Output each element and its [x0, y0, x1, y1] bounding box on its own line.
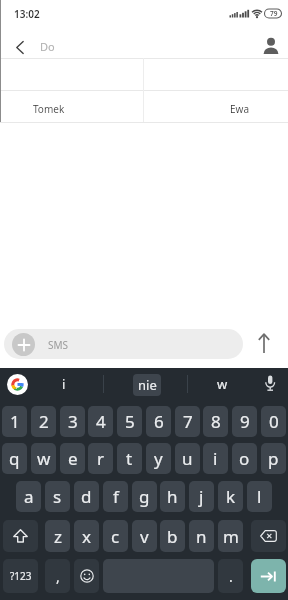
- staticText: n: [196, 525, 207, 548]
- staticText: 4: [96, 410, 106, 433]
- button[interactable]: d: [74, 481, 99, 512]
- staticText: a: [24, 485, 34, 508]
- button[interactable]: p: [261, 443, 286, 474]
- staticText: w: [37, 447, 51, 470]
- staticText: Ewa: [230, 102, 250, 116]
- staticText: 0: [269, 410, 279, 433]
- button[interactable]: 9: [232, 406, 257, 437]
- button[interactable]: k: [218, 481, 243, 512]
- button[interactable]: w: [31, 443, 56, 474]
- button[interactable]: [262, 37, 280, 55]
- staticText: Tomek: [33, 102, 65, 116]
- button[interactable]: s: [45, 481, 70, 512]
- staticText: v: [140, 525, 149, 548]
- button[interactable]: nie: [133, 374, 161, 396]
- button[interactable]: r: [88, 443, 113, 474]
- button[interactable]: 5: [117, 406, 142, 437]
- staticText: 7: [183, 410, 193, 433]
- staticText: r: [97, 447, 105, 470]
- staticText: j: [199, 485, 204, 508]
- button[interactable]: q: [2, 443, 27, 474]
- button[interactable]: i: [27, 370, 100, 398]
- staticText: z: [54, 525, 62, 548]
- staticText: 13:02: [14, 7, 40, 21]
- staticText: w: [217, 375, 228, 393]
- button[interactable]: [251, 520, 286, 552]
- staticText: 1: [10, 410, 20, 433]
- staticText: nie: [138, 376, 157, 394]
- staticText: Do: [40, 39, 55, 54]
- staticText: o: [239, 447, 250, 470]
- button[interactable]: f: [103, 481, 128, 512]
- button[interactable]: [12, 333, 35, 356]
- button[interactable]: j: [189, 481, 214, 512]
- button[interactable]: [251, 559, 286, 593]
- button[interactable]: 7: [175, 406, 200, 437]
- staticText: 6: [154, 410, 164, 433]
- staticText: d: [81, 485, 92, 508]
- staticText: i: [62, 375, 66, 393]
- staticText: s: [53, 485, 62, 508]
- staticText: c: [111, 525, 120, 548]
- button[interactable]: i: [203, 443, 228, 474]
- button[interactable]: t: [117, 443, 142, 474]
- button[interactable]: u: [175, 443, 200, 474]
- button[interactable]: ,: [45, 559, 70, 593]
- button[interactable]: o: [232, 443, 257, 474]
- button[interactable]: [263, 374, 277, 394]
- button[interactable]: g: [132, 481, 157, 512]
- staticText: i: [213, 447, 218, 470]
- staticText: 8: [211, 410, 221, 433]
- staticText: m: [223, 525, 239, 548]
- button[interactable]: 3: [60, 406, 85, 437]
- staticText: k: [226, 485, 236, 508]
- button[interactable]: h: [160, 481, 185, 512]
- staticText: h: [167, 485, 178, 508]
- staticText: f: [113, 485, 119, 508]
- staticText: e: [68, 447, 78, 470]
- button[interactable]: .: [218, 559, 243, 593]
- staticText: .: [229, 567, 233, 586]
- button[interactable]: l: [247, 481, 272, 512]
- staticText: t: [126, 447, 133, 470]
- staticText: y: [154, 447, 163, 470]
- staticText: 9: [240, 410, 250, 433]
- button[interactable]: z: [45, 520, 70, 552]
- button[interactable]: [16, 41, 24, 54]
- staticText: p: [268, 447, 279, 470]
- button[interactable]: b: [160, 520, 185, 552]
- button[interactable]: c: [103, 520, 128, 552]
- button[interactable]: x: [74, 520, 99, 552]
- button[interactable]: [256, 332, 272, 356]
- button[interactable]: w: [190, 370, 254, 398]
- button[interactable]: y: [146, 443, 171, 474]
- button[interactable]: v: [132, 520, 157, 552]
- button[interactable]: a: [16, 481, 41, 512]
- button[interactable]: m: [218, 520, 243, 552]
- button[interactable]: 2: [31, 406, 56, 437]
- button[interactable]: e: [60, 443, 85, 474]
- button[interactable]: 8: [203, 406, 228, 437]
- button[interactable]: 4: [88, 406, 113, 437]
- button[interactable]: [7, 374, 28, 395]
- staticText: 3: [68, 410, 78, 433]
- staticText: b: [167, 525, 178, 548]
- staticText: SMS: [48, 338, 69, 352]
- button[interactable]: n: [189, 520, 214, 552]
- button[interactable]: [4, 329, 243, 359]
- button[interactable]: Tomek: [1, 91, 143, 122]
- button[interactable]: 6: [146, 406, 171, 437]
- staticText: g: [139, 485, 150, 508]
- staticText: q: [9, 447, 20, 470]
- button[interactable]: [3, 520, 38, 552]
- button[interactable]: 0: [261, 406, 286, 437]
- button[interactable]: ?123: [3, 559, 38, 593]
- staticText: 5: [125, 410, 135, 433]
- staticText: u: [182, 447, 193, 470]
- button[interactable]: 1: [2, 406, 27, 437]
- button[interactable]: [74, 559, 99, 593]
- staticText: x: [82, 525, 91, 548]
- staticText: l: [257, 485, 262, 508]
- button[interactable]: Ewa: [144, 91, 288, 122]
